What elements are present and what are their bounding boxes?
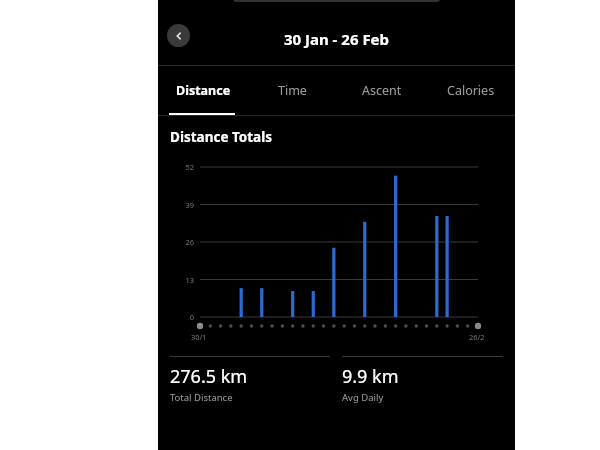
staticText: 30 Jan - 26 Feb <box>158 29 515 49</box>
staticText: 13 <box>166 275 194 285</box>
staticText: Avg Daily <box>342 391 384 404</box>
staticText: Calories <box>447 82 495 99</box>
staticText: 52 <box>166 162 194 172</box>
staticText: 30/1 <box>191 332 207 342</box>
button[interactable]: Back <box>167 24 190 47</box>
staticText: 39 <box>166 200 194 210</box>
staticText: 9.9 km <box>342 364 399 389</box>
staticText: Distance Totals <box>170 128 272 146</box>
button[interactable]: Time <box>248 66 337 115</box>
staticText: Distance <box>176 82 231 99</box>
staticText: 0 <box>166 312 194 322</box>
staticText: 26 <box>166 237 194 247</box>
staticText: 26/2 <box>469 332 485 342</box>
button[interactable]: Distance <box>158 66 248 115</box>
staticText: Total Distance <box>170 391 233 404</box>
staticText: Time <box>278 82 307 99</box>
button[interactable]: Calories <box>426 66 515 115</box>
button[interactable]: 276.5 km <box>170 356 330 404</box>
button[interactable]: Ascent <box>337 66 426 115</box>
staticText: 276.5 km <box>170 364 248 389</box>
button[interactable]: 9.9 km <box>342 356 503 404</box>
staticText: Ascent <box>362 82 402 99</box>
